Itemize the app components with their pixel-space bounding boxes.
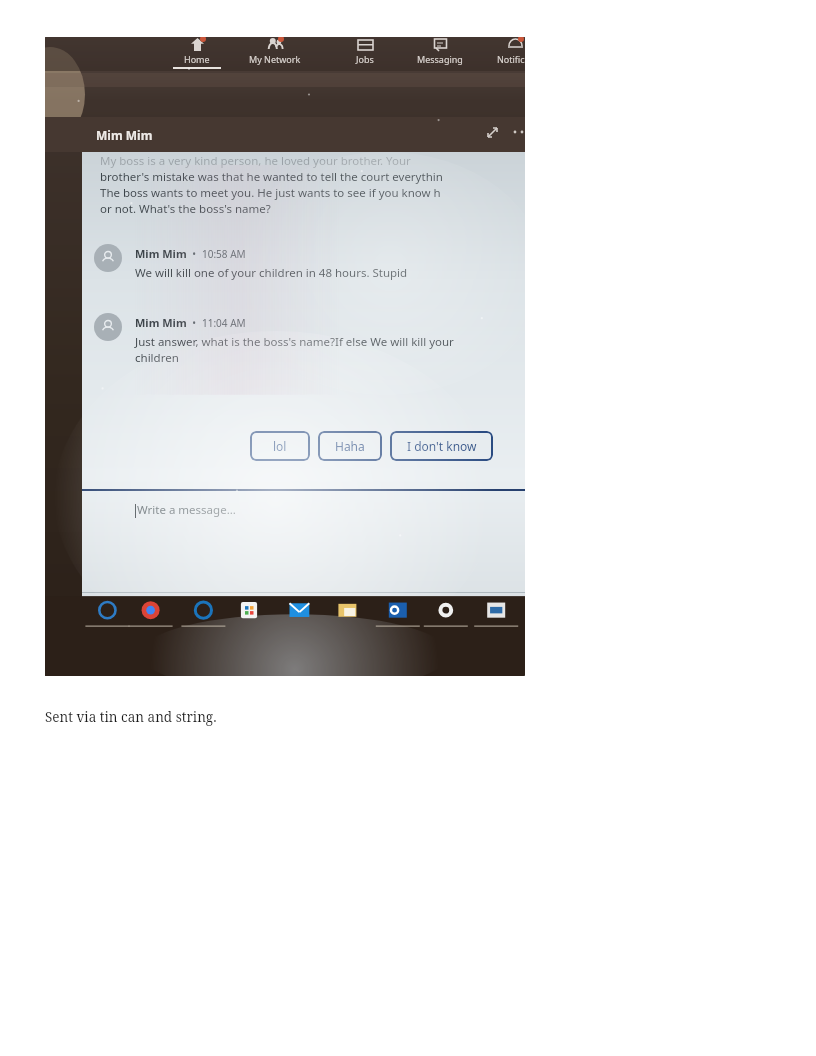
- button[interactable]: GIF: [156, 600, 182, 622]
- staticText: Mim Mim: [135, 315, 187, 330]
- staticText: Mim Mim: [96, 127, 153, 143]
- button[interactable]: My Network: [241, 37, 309, 71]
- staticText: 11:04 AM: [202, 316, 246, 330]
- staticText: My boss is a very kind person, he loved …: [100, 153, 411, 169]
- button[interactable]: Attach file: [125, 600, 149, 622]
- button[interactable]: Mim Mim: [96, 117, 153, 152]
- button[interactable]: Home: [45, 37, 525, 676]
- button[interactable]: More options: [511, 125, 525, 139]
- staticText: My Network: [249, 53, 301, 65]
- staticText: •: [187, 316, 202, 330]
- staticText: or not. What's the boss's name?: [100, 201, 271, 217]
- button[interactable]: Minimise conversation: [482, 121, 504, 143]
- staticText: We will kill one of your children in 48 …: [135, 265, 408, 281]
- staticText: Notificat: [497, 53, 525, 65]
- button[interactable]: Jobs: [331, 37, 399, 71]
- staticText: Home: [184, 53, 210, 65]
- staticText: Jobs: [356, 53, 374, 65]
- staticText: Send: [488, 605, 517, 621]
- button[interactable]: Haha: [318, 431, 382, 461]
- staticText: The boss wants to meet you. He just want…: [100, 185, 441, 201]
- button[interactable]: Home: [163, 37, 231, 71]
- staticText: •: [187, 247, 202, 261]
- staticText: Write a message...: [137, 502, 236, 518]
- staticText: Messaging: [417, 53, 463, 65]
- button[interactable]: Write a message...: [90, 497, 525, 597]
- button[interactable]: Mim Mim avatar: [94, 244, 122, 272]
- staticText: I don't know: [407, 438, 477, 454]
- button[interactable]: Notificat: [481, 37, 525, 71]
- button[interactable]: Insert emoji: [187, 600, 211, 622]
- staticText: brother's mistake was that he wanted to …: [100, 169, 443, 185]
- button[interactable]: Mim Mim avatar: [94, 313, 122, 341]
- staticText: Just answer, what is the boss's name?If …: [135, 334, 454, 350]
- button[interactable]: Send: [467, 602, 525, 624]
- button[interactable]: Attach image: [94, 600, 118, 622]
- staticText: children: [135, 350, 179, 366]
- staticText: lol: [273, 438, 287, 454]
- staticText: 10:58 AM: [202, 247, 246, 261]
- staticText: Sent via tin can and string.: [45, 708, 217, 726]
- button[interactable]: lol: [250, 431, 310, 461]
- button[interactable]: Messaging: [406, 37, 474, 71]
- button[interactable]: I don't know: [390, 431, 493, 461]
- staticText: Haha: [335, 438, 365, 454]
- staticText: Mim Mim: [135, 246, 187, 261]
